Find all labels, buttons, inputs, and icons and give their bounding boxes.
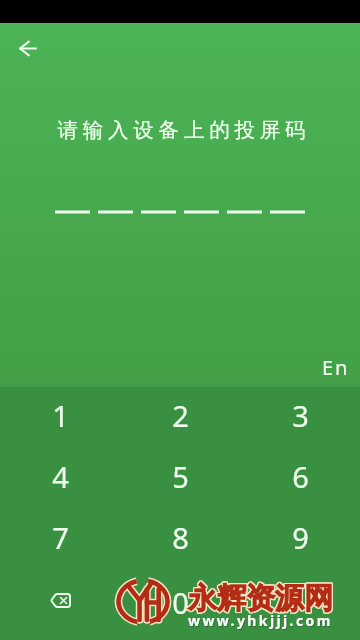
staticText: 永辉资源网 — [187, 579, 332, 616]
staticText: En — [322, 354, 350, 381]
staticText: 8 — [172, 518, 189, 552]
button[interactable]: 3 — [240, 396, 360, 430]
staticText: 1 — [52, 396, 69, 430]
button[interactable]: 6 — [240, 457, 360, 491]
button[interactable]: 0 — [120, 583, 240, 617]
button[interactable]: 2 — [120, 396, 240, 430]
staticText: 永辉资源网 — [188, 581, 333, 618]
staticText: 永辉资源网 — [189, 579, 334, 616]
staticText: 6 — [292, 457, 309, 491]
button[interactable]: 1 — [0, 396, 120, 430]
button[interactable]: 9 — [240, 518, 360, 552]
staticText: www.yhkjjj.com — [189, 612, 334, 631]
staticText: 永辉资源网 — [187, 581, 332, 618]
staticText: 永辉资源网 — [187, 580, 332, 617]
staticText: 永辉资源网 — [189, 580, 334, 617]
button[interactable]: 7 — [0, 518, 120, 552]
staticText: 7 — [52, 518, 69, 552]
staticText: 4 — [52, 457, 69, 491]
staticText: 永辉资源网 — [189, 581, 334, 618]
staticText: 0 — [172, 583, 189, 617]
staticText: 9 — [292, 518, 309, 552]
staticText: 永辉资源网 — [188, 579, 333, 616]
button[interactable]: Back — [4, 24, 52, 72]
button[interactable]: En — [313, 350, 357, 384]
button[interactable]: 5 — [120, 457, 240, 491]
staticText: 2 — [172, 396, 189, 430]
button[interactable]: 4 — [0, 457, 120, 491]
staticText: 永辉资源网 — [188, 580, 333, 617]
button[interactable]: 8 — [120, 518, 240, 552]
staticText: 请输入设备上的投屏码 — [55, 117, 308, 143]
staticText: 5 — [172, 457, 189, 491]
staticText: 3 — [292, 396, 309, 430]
button[interactable]: Backspace — [0, 583, 120, 617]
staticText: www.yhkjjj.com — [188, 611, 333, 630]
